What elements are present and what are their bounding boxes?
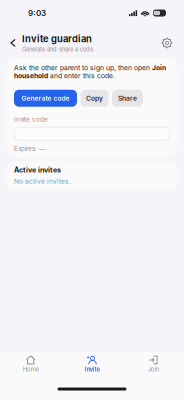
button[interactable]: Share [112, 90, 143, 107]
staticText: Generate and share a code. [22, 46, 95, 53]
button[interactable]: Generate code [14, 90, 77, 107]
button[interactable]: Home [0, 353, 61, 379]
button[interactable]: Copy [80, 90, 108, 107]
staticText: Copy [86, 94, 103, 102]
staticText: Expires: — [14, 145, 45, 153]
staticText: No active invites. [14, 177, 71, 185]
button[interactable]: Invite [61, 353, 123, 379]
staticText: Join [148, 366, 159, 373]
button[interactable]: Back [4, 31, 22, 55]
staticText: 9:03 [28, 8, 46, 18]
staticText: Invite [84, 366, 99, 373]
staticText: Invite code [14, 116, 48, 123]
button[interactable]: Settings [155, 30, 179, 56]
staticText: Generate code [21, 94, 69, 102]
staticText: Active invites [14, 166, 61, 174]
staticText: Home [23, 366, 39, 373]
staticText: Share [118, 94, 137, 102]
button[interactable]: Join [123, 353, 184, 379]
staticText: Invite guardian [22, 33, 92, 44]
staticText: Ask the other parent to sign up, then op… [14, 64, 166, 80]
